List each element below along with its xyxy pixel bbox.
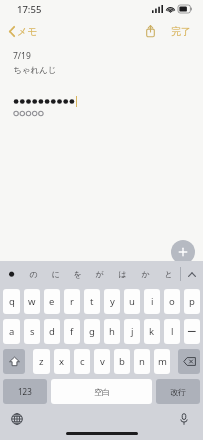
button[interactable]: g: [84, 319, 100, 344]
button[interactable]: t: [84, 289, 100, 314]
staticText: h: [109, 325, 115, 338]
staticText: 改行: [170, 387, 186, 397]
staticText: i: [151, 295, 154, 308]
button[interactable]: s: [24, 319, 40, 344]
button[interactable]: Backspace: [178, 349, 200, 374]
button[interactable]: が: [88, 261, 111, 287]
button[interactable]: e: [44, 289, 60, 314]
button[interactable]: m: [154, 349, 170, 374]
staticText: p: [189, 295, 195, 308]
button[interactable]: は: [111, 261, 134, 287]
button[interactable]: Dictation: [175, 410, 193, 428]
staticText: e: [49, 295, 55, 308]
staticText: を: [73, 269, 82, 279]
button[interactable]: f: [64, 319, 80, 344]
button[interactable]: k: [144, 319, 160, 344]
staticText: d: [49, 325, 55, 338]
button[interactable]: Share: [141, 21, 159, 41]
button[interactable]: Expand suggestions: [181, 261, 203, 287]
button[interactable]: z: [33, 349, 50, 374]
staticText: は: [118, 269, 127, 279]
staticText: に: [51, 269, 60, 279]
button[interactable]: j: [124, 319, 140, 344]
staticText: o: [169, 295, 175, 308]
staticText: a: [9, 325, 15, 338]
staticText: c: [80, 355, 85, 368]
staticText: か: [141, 269, 150, 279]
staticText: ー: [187, 326, 197, 338]
staticText: 完了: [171, 25, 191, 38]
button[interactable]: r: [64, 289, 80, 314]
staticText: v: [100, 355, 105, 368]
staticText: z: [39, 355, 44, 368]
button[interactable]: ●: [0, 261, 22, 287]
button[interactable]: 空白: [51, 379, 152, 404]
button[interactable]: と: [157, 261, 180, 287]
button[interactable]: w: [24, 289, 40, 314]
staticText: m: [158, 355, 167, 368]
button[interactable]: メモ: [6, 22, 41, 41]
staticText: の: [29, 269, 38, 279]
staticText: 7/19: [13, 50, 31, 62]
button[interactable]: a: [3, 319, 20, 344]
staticText: l: [171, 325, 174, 338]
button[interactable]: か: [134, 261, 157, 287]
button[interactable]: Shift: [3, 349, 25, 374]
button[interactable]: c: [74, 349, 90, 374]
staticText: x: [59, 355, 65, 368]
button[interactable]: 123: [3, 379, 47, 404]
staticText: w: [28, 295, 36, 308]
staticText: n: [139, 355, 145, 368]
staticText: 空白: [94, 387, 110, 397]
button[interactable]: p: [184, 289, 200, 314]
button[interactable]: o: [164, 289, 180, 314]
staticText: ●: [8, 270, 15, 278]
button[interactable]: y: [104, 289, 120, 314]
staticText: t: [90, 295, 94, 308]
button[interactable]: 完了: [168, 22, 194, 41]
button[interactable]: d: [44, 319, 60, 344]
staticText: y: [110, 295, 115, 308]
staticText: ちゃれんじ: [13, 65, 57, 76]
staticText: と: [164, 269, 173, 279]
staticText: q: [9, 295, 15, 308]
button[interactable]: 改行: [156, 379, 200, 404]
staticText: メモ: [17, 25, 38, 38]
button[interactable]: ー: [184, 319, 200, 344]
staticText: j: [131, 325, 134, 338]
button[interactable]: h: [104, 319, 120, 344]
button[interactable]: に: [44, 261, 66, 287]
button[interactable]: u: [124, 289, 140, 314]
button[interactable]: の: [22, 261, 44, 287]
button[interactable]: v: [94, 349, 110, 374]
staticText: f: [70, 325, 74, 338]
button[interactable]: を: [66, 261, 88, 287]
button[interactable]: l: [164, 319, 180, 344]
staticText: s: [30, 325, 35, 338]
staticText: 123: [18, 386, 32, 397]
button[interactable]: Change keyboard: [8, 410, 26, 428]
button[interactable]: b: [114, 349, 130, 374]
button[interactable]: x: [54, 349, 70, 374]
staticText: u: [129, 295, 135, 308]
staticText: k: [149, 325, 155, 338]
staticText: が: [95, 269, 104, 279]
staticText: 17:55: [17, 3, 42, 16]
staticText: g: [89, 325, 95, 338]
staticText: r: [70, 295, 74, 308]
button[interactable]: n: [134, 349, 150, 374]
button[interactable]: q: [3, 289, 20, 314]
button[interactable]: i: [144, 289, 160, 314]
button[interactable]: Add attachment: [171, 240, 195, 264]
staticText: b: [119, 355, 125, 368]
